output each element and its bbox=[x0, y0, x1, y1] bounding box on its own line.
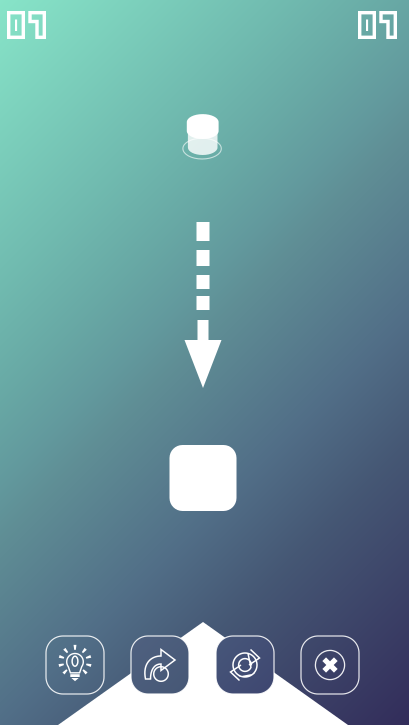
button[interactable]: Hint bbox=[46, 636, 104, 694]
button[interactable]: Share bbox=[131, 636, 189, 694]
button[interactable]: Restart bbox=[216, 636, 274, 694]
button[interactable]: Close bbox=[301, 636, 359, 694]
